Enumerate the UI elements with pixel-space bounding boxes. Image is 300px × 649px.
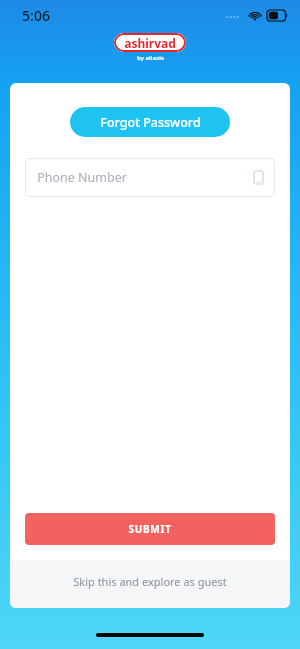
button[interactable]: SUBMIT (25, 513, 275, 545)
staticText: Phone Number (37, 169, 127, 186)
staticText: Forgot Password (100, 114, 201, 131)
other: Phone number input (254, 171, 263, 184)
staticText: by aliaxis (137, 54, 164, 62)
button[interactable]: Phone Number (25, 158, 275, 197)
button[interactable]: Forgot Password (70, 107, 230, 137)
button[interactable]: Skip this and explore as guest (10, 560, 290, 608)
staticText: ashirvad (124, 35, 176, 51)
staticText: Skip this and explore as guest (73, 574, 227, 589)
staticText: SUBMIT (128, 522, 172, 536)
staticText: 5:06 (22, 6, 50, 25)
